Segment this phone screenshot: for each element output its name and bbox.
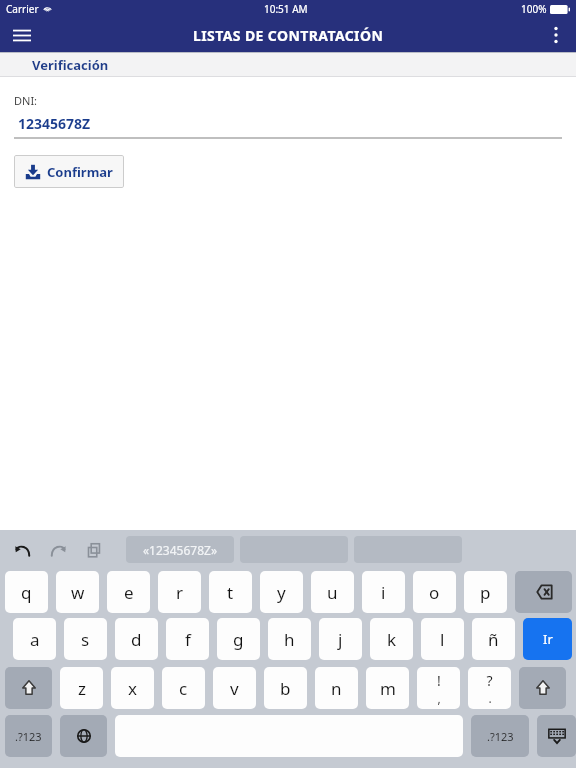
- button[interactable]: a: [13, 618, 56, 660]
- button[interactable]: m: [366, 667, 409, 709]
- button[interactable]: «12345678Z»: [126, 536, 234, 563]
- staticText: n: [331, 677, 342, 700]
- staticText: «12345678Z»: [143, 542, 217, 558]
- button[interactable]: x: [111, 667, 154, 709]
- button[interactable]: n: [315, 667, 358, 709]
- staticText: u: [327, 581, 338, 604]
- button[interactable]: j: [319, 618, 362, 660]
- button[interactable]: .?123: [471, 715, 529, 757]
- staticText: w: [71, 581, 85, 604]
- button[interactable]: g: [217, 618, 260, 660]
- staticText: t: [227, 581, 234, 604]
- staticText: 10:51 AM: [264, 2, 308, 16]
- staticText: .: [488, 690, 492, 706]
- staticText: .?123: [487, 729, 514, 744]
- staticText: j: [338, 628, 343, 651]
- staticText: q: [21, 581, 32, 604]
- staticText: p: [480, 581, 491, 604]
- button[interactable]: h: [268, 618, 311, 660]
- staticText: Carrier: [6, 2, 39, 16]
- button[interactable]: Copy: [84, 540, 104, 560]
- staticText: b: [280, 677, 291, 700]
- staticText: k: [387, 628, 397, 651]
- button[interactable]: Undo: [12, 540, 32, 560]
- staticText: ?: [486, 671, 493, 690]
- staticText: ,: [437, 690, 441, 706]
- staticText: c: [179, 677, 188, 700]
- staticText: f: [185, 628, 191, 651]
- button[interactable]: Menu: [0, 18, 44, 52]
- button[interactable]: f: [166, 618, 209, 660]
- staticText: g: [233, 628, 244, 651]
- button[interactable]: s: [64, 618, 107, 660]
- button[interactable]: Shift: [5, 667, 52, 709]
- button[interactable]: d: [115, 618, 158, 660]
- staticText: s: [81, 628, 90, 651]
- button[interactable]: ñ: [472, 618, 515, 660]
- button[interactable]: c: [162, 667, 205, 709]
- button[interactable]: u: [311, 571, 354, 613]
- staticText: h: [284, 628, 295, 651]
- staticText: DNI:: [14, 93, 38, 108]
- button[interactable]: v: [213, 667, 256, 709]
- staticText: e: [124, 581, 134, 604]
- staticText: !: [437, 671, 441, 690]
- button[interactable]: o: [413, 571, 456, 613]
- staticText: 100%: [521, 2, 547, 16]
- button[interactable]: !: [417, 667, 460, 709]
- staticText: y: [277, 581, 286, 604]
- button[interactable]: q: [5, 571, 48, 613]
- staticText: LISTAS DE CONTRATACIÓN: [193, 26, 384, 45]
- staticText: d: [131, 628, 142, 651]
- button[interactable]: Hide keyboard: [537, 715, 576, 757]
- staticText: 12345678Z: [18, 114, 91, 133]
- staticText: Ir: [543, 630, 553, 648]
- staticText: r: [176, 581, 184, 604]
- button[interactable]: t: [209, 571, 252, 613]
- staticText: l: [440, 628, 445, 651]
- button[interactable]: Redo: [48, 540, 68, 560]
- button[interactable]: z: [60, 667, 103, 709]
- staticText: Verificación: [32, 56, 109, 74]
- button[interactable]: r: [158, 571, 201, 613]
- button[interactable]: p: [464, 571, 507, 613]
- button[interactable]: l: [421, 618, 464, 660]
- staticText: .?123: [15, 729, 42, 744]
- button[interactable]: Ir: [523, 618, 572, 660]
- button[interactable]: Shift: [519, 667, 566, 709]
- staticText: o: [429, 581, 440, 604]
- button[interactable]: More options: [536, 18, 576, 52]
- button[interactable]: k: [370, 618, 413, 660]
- staticText: m: [380, 677, 396, 700]
- staticText: a: [30, 628, 40, 651]
- button[interactable]: Backspace: [515, 571, 572, 613]
- button[interactable]: y: [260, 571, 303, 613]
- button[interactable]: b: [264, 667, 307, 709]
- staticText: i: [381, 581, 386, 604]
- button[interactable]: .?123: [5, 715, 52, 757]
- button[interactable]: i: [362, 571, 405, 613]
- button[interactable]: Change language: [60, 715, 107, 757]
- staticText: ñ: [488, 628, 499, 651]
- button[interactable]: w: [56, 571, 99, 613]
- staticText: x: [128, 677, 137, 700]
- staticText: v: [230, 677, 239, 700]
- button[interactable]: ?: [468, 667, 511, 709]
- staticText: Confirmar: [47, 163, 113, 181]
- button[interactable]: e: [107, 571, 150, 613]
- staticText: z: [78, 677, 86, 700]
- button[interactable]: Confirmar: [14, 155, 124, 188]
